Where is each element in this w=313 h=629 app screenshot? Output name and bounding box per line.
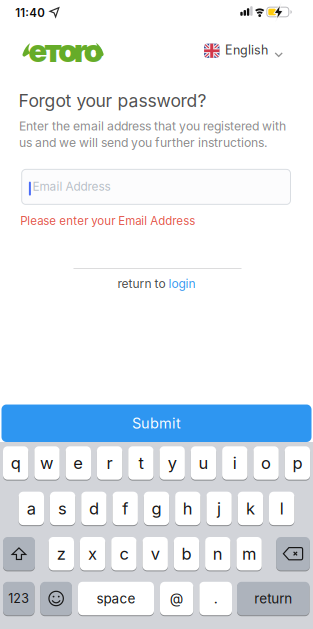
staticText: us and we will send you further instruct…: [19, 135, 268, 150]
button[interactable]: return: [237, 582, 309, 615]
staticText: w: [40, 453, 54, 473]
button[interactable]: p: [285, 446, 310, 480]
button[interactable]: v: [142, 537, 168, 570]
staticText: p: [292, 453, 302, 473]
button[interactable]: r: [97, 446, 122, 480]
button[interactable]: k: [238, 492, 263, 525]
button[interactable]: @: [160, 582, 193, 615]
staticText: m: [242, 544, 256, 564]
button[interactable]: Delete: [276, 537, 310, 570]
button[interactable]: y: [159, 446, 185, 480]
button[interactable]: 123: [3, 582, 34, 615]
button[interactable]: f: [112, 492, 138, 525]
staticText: return: [254, 590, 292, 607]
staticText: login: [168, 276, 195, 291]
staticText: k: [246, 498, 255, 518]
staticText: b: [181, 544, 191, 564]
staticText: Submit: [132, 414, 181, 432]
staticText: r: [107, 453, 113, 473]
button[interactable]: x: [80, 537, 105, 570]
button[interactable]: q: [3, 446, 28, 480]
button[interactable]: Emoji: [40, 582, 72, 615]
button[interactable]: t: [128, 446, 154, 480]
button[interactable]: o: [253, 446, 279, 480]
staticText: j: [217, 498, 221, 518]
staticText: z: [57, 544, 66, 564]
button[interactable]: English: [204, 42, 283, 57]
button[interactable]: z: [49, 537, 74, 570]
staticText: 11:40: [15, 6, 45, 20]
staticText: f: [122, 498, 128, 518]
staticText: o: [261, 453, 271, 473]
button[interactable]: Submit: [1, 404, 311, 442]
button[interactable]: g: [144, 492, 169, 525]
staticText: q: [11, 453, 21, 473]
button[interactable]: i: [222, 446, 247, 480]
staticText: g: [151, 498, 161, 518]
button[interactable]: m: [236, 537, 262, 570]
staticText: s: [58, 498, 67, 518]
staticText: space: [96, 590, 135, 607]
staticText: x: [88, 544, 97, 564]
button[interactable]: .: [199, 582, 232, 615]
button[interactable]: c: [111, 537, 137, 570]
button[interactable]: b: [174, 537, 199, 570]
button[interactable]: a: [19, 492, 44, 525]
staticText: d: [89, 498, 99, 518]
staticText: .: [214, 590, 218, 607]
button[interactable]: d: [81, 492, 107, 525]
staticText: Enter the email address that you registe…: [19, 119, 286, 133]
button[interactable]: space: [78, 582, 154, 615]
button[interactable]: n: [205, 537, 230, 570]
staticText: l: [280, 498, 284, 518]
button[interactable]: w: [34, 446, 60, 480]
button[interactable]: l: [269, 492, 294, 525]
button[interactable]: j: [206, 492, 232, 525]
button[interactable]: h: [175, 492, 200, 525]
staticText: t: [138, 453, 143, 473]
staticText: Please enter your Email Address: [20, 214, 195, 228]
staticText: return to: [117, 276, 168, 291]
button[interactable]: u: [191, 446, 216, 480]
staticText: c: [119, 544, 128, 564]
button[interactable]: s: [50, 492, 75, 525]
staticText: h: [183, 498, 193, 518]
staticText: Forgot your password?: [18, 90, 206, 111]
staticText: Email Address: [32, 179, 110, 194]
staticText: e: [73, 453, 83, 473]
staticText: eтoro: [29, 32, 103, 70]
staticText: 123: [8, 591, 29, 606]
staticText: @: [170, 590, 184, 607]
staticText: i: [233, 453, 237, 473]
button[interactable]: login: [168, 276, 195, 291]
staticText: u: [198, 453, 208, 473]
button[interactable]: Shift: [3, 537, 35, 570]
staticText: a: [27, 498, 36, 518]
button[interactable]: e: [66, 446, 91, 480]
staticText: n: [213, 544, 223, 564]
staticText: English: [225, 42, 268, 57]
staticText: v: [151, 544, 160, 564]
staticText: y: [168, 453, 177, 473]
